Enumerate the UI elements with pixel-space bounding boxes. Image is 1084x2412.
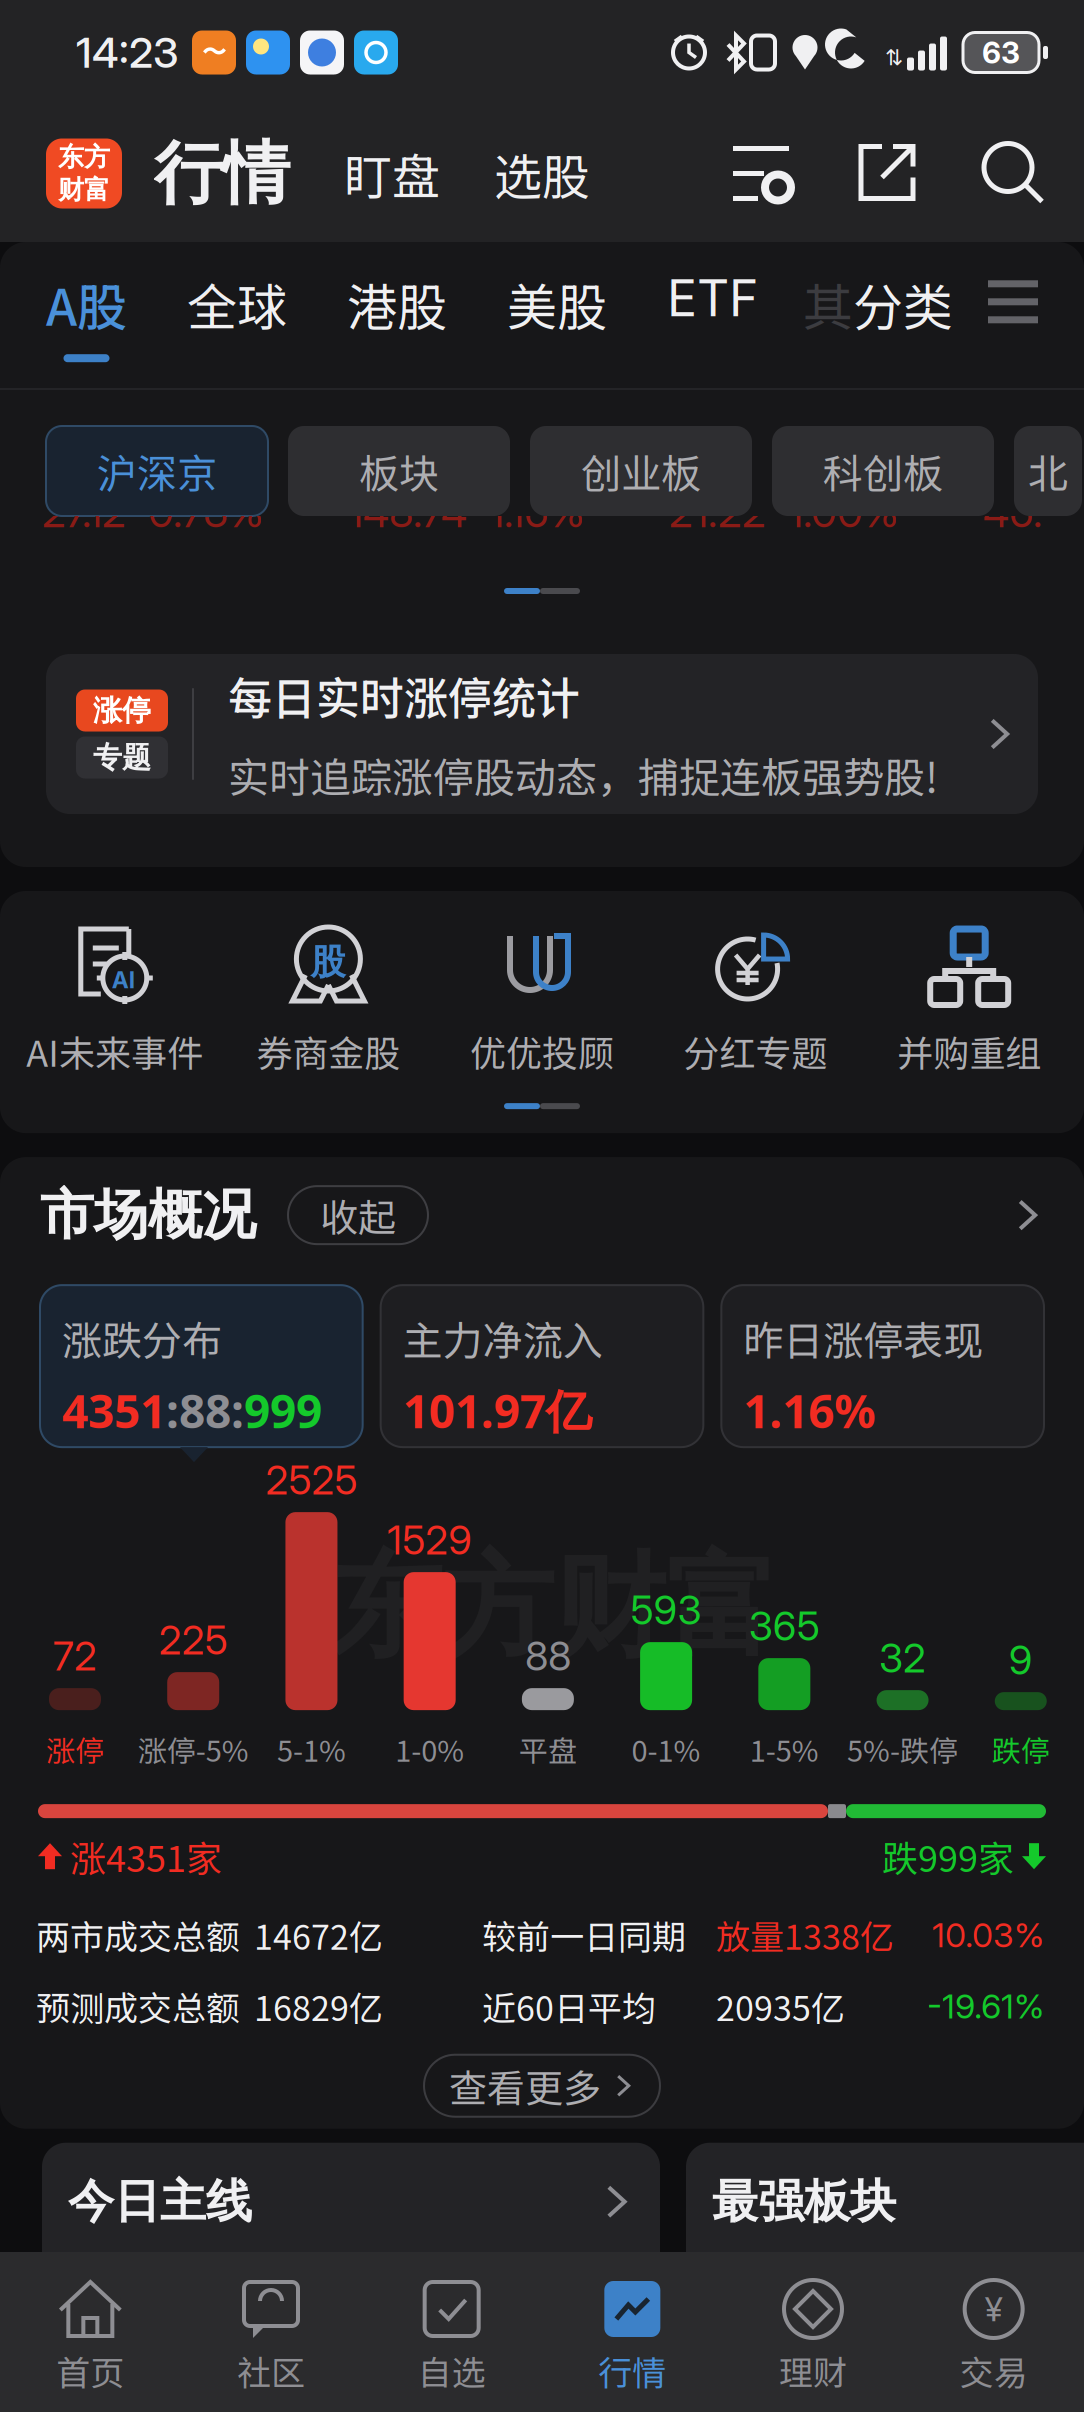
staticText: AI未来事件 (26, 1025, 203, 1077)
staticText: 创业板 (581, 442, 701, 500)
button[interactable]: 更多分类 (988, 268, 1038, 324)
staticText: 5-1% (277, 1728, 346, 1770)
staticText: 交易 (960, 2346, 1028, 2395)
button[interactable]: 优优投顾 (435, 927, 649, 1077)
staticText: ¥ (985, 2288, 1003, 2329)
staticText: 〜 (202, 37, 226, 68)
staticText: 9 (1009, 1636, 1033, 1684)
staticText: : (231, 1379, 244, 1442)
staticText: 理财 (779, 2346, 847, 2395)
button[interactable]: 涨跌分布 (40, 1285, 363, 1447)
staticText: 5%-跌停 (847, 1728, 958, 1770)
button[interactable]: 并购重组 (862, 927, 1076, 1077)
button[interactable]: 设置 (730, 143, 792, 203)
button[interactable]: 昨日涨停表现 (721, 1285, 1044, 1447)
staticText: 科创板 (823, 442, 943, 500)
staticText: 1.16% (743, 1379, 875, 1442)
staticText: 14:23 (76, 27, 178, 78)
staticText: 自选 (418, 2346, 486, 2395)
staticText: 每日实时涨停统计 (228, 663, 580, 727)
button[interactable]: A股 (46, 268, 127, 362)
staticText: 593 (631, 1586, 702, 1634)
button[interactable]: 科创板 (772, 426, 994, 516)
staticText: 市场概况 (40, 1181, 256, 1249)
staticText: 美股 (507, 268, 607, 340)
staticText: 主力净流入 (403, 1309, 603, 1367)
staticText: 88 (525, 1632, 571, 1680)
button[interactable]: 涨停 (46, 654, 1038, 814)
button[interactable]: 主力净流入 (381, 1285, 703, 1447)
button[interactable]: 美股 (507, 268, 607, 340)
staticText: 并购重组 (897, 1025, 1041, 1077)
staticText: 225 (159, 1616, 228, 1664)
staticText: 选股 (494, 139, 590, 208)
button[interactable]: 理财 (723, 2252, 903, 2412)
staticText: 优优投顾 (470, 1025, 614, 1077)
button[interactable]: 沪深京 (46, 426, 268, 516)
button[interactable]: ETF (667, 268, 759, 328)
staticText: 21.22 1.00% (669, 487, 899, 537)
staticText: 东方财富 (330, 1537, 778, 1678)
staticText: 分类 (853, 268, 953, 340)
button[interactable]: 港股 (347, 268, 447, 340)
staticText: ETF (667, 268, 759, 328)
button[interactable]: 行情 (154, 131, 290, 216)
staticText: 16829亿 (254, 1981, 383, 2031)
staticText: 其 (803, 268, 853, 340)
staticText: 近60日平均 (482, 1981, 656, 2031)
button[interactable]: 搜索 (984, 143, 1044, 203)
staticText: 昨日涨停表现 (743, 1309, 983, 1367)
staticText: 今日主线 (68, 2173, 252, 2231)
staticText: 20935亿 (716, 1981, 845, 2031)
button[interactable]: 分类 (853, 268, 953, 340)
button[interactable]: 首页 (0, 2252, 181, 2412)
staticText: 股 (310, 940, 345, 984)
button[interactable]: 最强板块 (686, 2143, 1084, 2363)
staticText: 较前一日同期 (482, 1910, 686, 1959)
staticText: 46. (983, 487, 1042, 537)
staticText: 首页 (56, 2346, 124, 2395)
staticText: 收起 (320, 1188, 396, 1243)
staticText: 148.74 1.16% (348, 487, 585, 537)
button[interactable]: AI (8, 927, 222, 1077)
button[interactable]: 分红专题 (649, 927, 862, 1077)
button[interactable]: 收起 (288, 1186, 428, 1244)
button[interactable]: 查看更多 (424, 2055, 660, 2117)
staticText: 1-0% (395, 1728, 464, 1770)
staticText: AI (112, 966, 135, 994)
button[interactable]: 板块 (288, 426, 510, 516)
button[interactable]: 分享 (858, 143, 918, 203)
staticText: 2525 (265, 1456, 357, 1504)
button[interactable]: 创业板 (530, 426, 752, 516)
button[interactable]: 北 (1014, 426, 1082, 516)
button[interactable]: 今日主线 (42, 2143, 660, 2363)
staticText: : (166, 1379, 179, 1442)
staticText: 0-1% (632, 1728, 701, 1770)
staticText: 10.03% (932, 1914, 1044, 1955)
button[interactable]: 选股 (494, 139, 590, 208)
staticText: 72 (53, 1632, 97, 1680)
button[interactable]: 社区 (181, 2252, 361, 2412)
staticText: 27.12 0.73% (42, 487, 264, 537)
staticText: 专题 (93, 739, 151, 776)
staticText: 涨4351家 (70, 1830, 222, 1882)
staticText: 63 (982, 34, 1020, 71)
staticText: 1529 (387, 1516, 472, 1564)
button[interactable]: 股 (222, 927, 435, 1077)
button[interactable]: ¥ (903, 2252, 1084, 2412)
staticText: ⇅ (885, 45, 903, 70)
staticText: 4351 (62, 1379, 166, 1442)
staticText: 101.97亿 (403, 1379, 592, 1442)
staticText: 查看更多 (449, 2058, 601, 2113)
staticText: 行情 (598, 2346, 666, 2395)
button[interactable]: 盯盘 (344, 139, 440, 208)
button[interactable]: 行情 (542, 2252, 723, 2412)
staticText: 东方 (58, 141, 110, 173)
staticText: 两市成交总额 (36, 1910, 240, 1959)
button[interactable]: 东方财富 (46, 138, 122, 208)
button[interactable]: 自选 (361, 2252, 542, 2412)
staticText: 港股 (347, 268, 447, 340)
staticText: 最强板块 (712, 2173, 896, 2231)
button[interactable]: 全球 (187, 268, 287, 340)
staticText: 北 (1028, 442, 1068, 500)
